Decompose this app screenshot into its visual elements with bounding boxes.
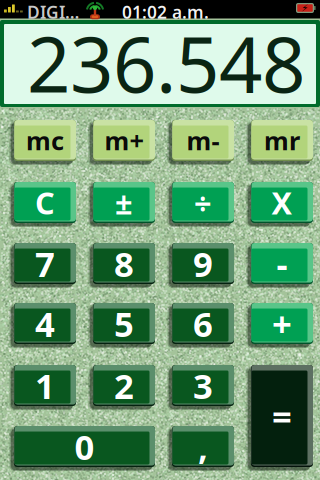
- button[interactable]: -: [251, 243, 313, 284]
- staticText: 1: [35, 362, 55, 408]
- button[interactable]: 3: [172, 365, 234, 406]
- button[interactable]: 8: [93, 243, 155, 284]
- button[interactable]: 9: [172, 243, 234, 284]
- staticText: 4: [35, 300, 55, 346]
- staticText: =: [272, 393, 292, 439]
- staticText: ,: [198, 423, 208, 469]
- staticText: 3: [193, 362, 213, 408]
- staticText: DIGI…: [27, 0, 79, 23]
- staticText: m-: [186, 124, 219, 157]
- staticText: +: [272, 300, 292, 346]
- button[interactable]: m+: [93, 120, 155, 161]
- staticText: 5: [114, 300, 134, 346]
- staticText: 0: [74, 423, 94, 469]
- button[interactable]: mr: [251, 120, 313, 161]
- button[interactable]: 1: [14, 365, 76, 406]
- button[interactable]: ,: [172, 426, 234, 467]
- staticText: ±: [115, 182, 133, 223]
- button[interactable]: =: [251, 365, 313, 467]
- button[interactable]: 6: [172, 303, 234, 344]
- staticText: 236.548: [27, 12, 305, 113]
- staticText: 01:02 a.m.: [122, 0, 209, 23]
- staticText: 7: [35, 240, 55, 286]
- staticText: 9: [193, 240, 213, 286]
- button[interactable]: ÷: [172, 182, 234, 223]
- staticText: X: [271, 182, 292, 223]
- button[interactable]: C: [14, 182, 76, 223]
- button[interactable]: 5: [93, 303, 155, 344]
- button[interactable]: m-: [172, 120, 234, 161]
- button[interactable]: 2: [93, 365, 155, 406]
- button[interactable]: 4: [14, 303, 76, 344]
- staticText: ÷: [194, 182, 212, 223]
- staticText: C: [35, 182, 55, 223]
- button[interactable]: +: [251, 303, 313, 344]
- staticText: -: [276, 240, 287, 286]
- staticText: m+: [104, 124, 143, 157]
- button[interactable]: ±: [93, 182, 155, 223]
- button[interactable]: 7: [14, 243, 76, 284]
- staticText: 6: [193, 300, 213, 346]
- staticText: 8: [114, 240, 134, 286]
- staticText: 2: [114, 362, 134, 408]
- staticText: mc: [26, 124, 64, 157]
- button[interactable]: mc: [14, 120, 76, 161]
- button[interactable]: 0: [14, 426, 155, 467]
- staticText: mr: [264, 124, 300, 157]
- button[interactable]: X: [251, 182, 313, 223]
